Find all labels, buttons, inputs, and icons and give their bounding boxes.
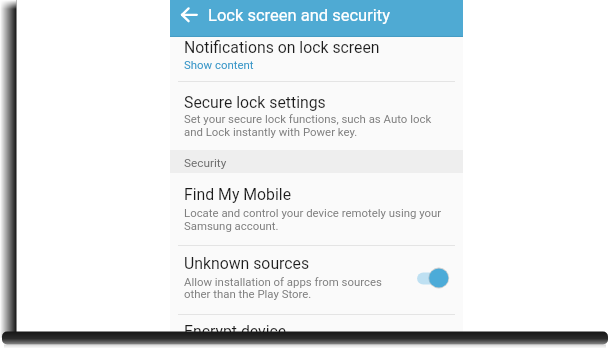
staticText: Notifications on lock screen	[184, 38, 380, 57]
staticText: Security	[184, 156, 227, 170]
button[interactable]	[170, 37, 463, 81]
staticText: Encrypt device	[184, 322, 287, 341]
staticText: other than the Play Store.	[184, 287, 312, 300]
staticText: Locate and control your device remotely …	[184, 206, 442, 219]
staticText: Samsung account.	[184, 219, 279, 232]
button[interactable]	[170, 81, 463, 150]
button[interactable]	[170, 245, 463, 314]
staticText: Lock screen and security	[208, 6, 390, 25]
staticText: Set your secure lock functions, such as …	[184, 112, 432, 125]
button[interactable]	[170, 314, 463, 338]
button[interactable]	[170, 174, 463, 246]
button[interactable]	[413, 263, 455, 293]
staticText: Find My Mobile	[184, 185, 292, 204]
staticText: and Lock instantly with Power key.	[184, 125, 358, 138]
staticText: Secure lock settings	[184, 93, 326, 112]
button[interactable]	[170, 0, 207, 37]
staticText: Allow installation of apps from sources	[184, 275, 382, 288]
staticText: Show content	[184, 58, 254, 71]
staticText: Unknown sources	[184, 254, 310, 273]
